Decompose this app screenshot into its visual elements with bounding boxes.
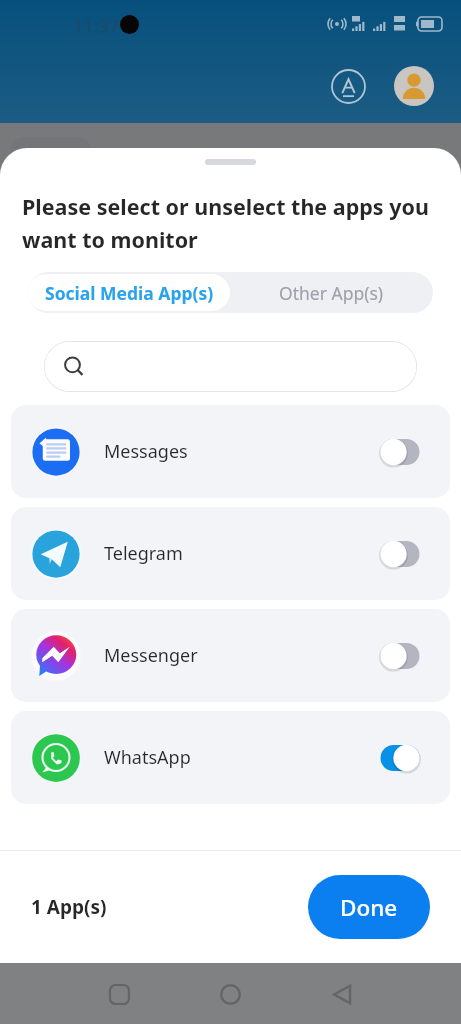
button[interactable]: Done — [308, 875, 430, 939]
button[interactable]: Other App(s) — [230, 272, 433, 313]
button[interactable]: Recents — [95, 970, 143, 1018]
button[interactable] — [375, 634, 425, 678]
staticText: Messenger — [104, 643, 198, 668]
button[interactable]: WhatsApp — [11, 711, 450, 804]
button[interactable]: Home — [206, 970, 254, 1018]
staticText: 11:37 — [73, 14, 120, 39]
button[interactable] — [375, 430, 425, 474]
button[interactable]: Messenger — [11, 609, 450, 702]
button[interactable] — [375, 532, 425, 576]
staticText: Social Media App(s) — [45, 281, 214, 305]
staticText: 1 App(s) — [31, 894, 107, 920]
button[interactable] — [375, 736, 425, 780]
button[interactable] — [44, 341, 417, 392]
staticText: Done — [340, 892, 398, 923]
staticText: Other App(s) — [279, 281, 384, 305]
staticText: Telegram — [104, 541, 183, 566]
staticText: Please select or unselect the apps you w… — [22, 192, 449, 254]
button[interactable]: Social Media App(s) — [28, 274, 230, 311]
button[interactable]: Back — [318, 970, 366, 1018]
staticText: WhatsApp — [104, 745, 191, 770]
button[interactable]: Profile — [394, 66, 434, 106]
button[interactable]: Telegram — [11, 507, 450, 600]
button[interactable]: Accessibility — [330, 68, 367, 105]
staticText: Messages — [104, 439, 188, 464]
button[interactable]: Messages — [11, 405, 450, 498]
